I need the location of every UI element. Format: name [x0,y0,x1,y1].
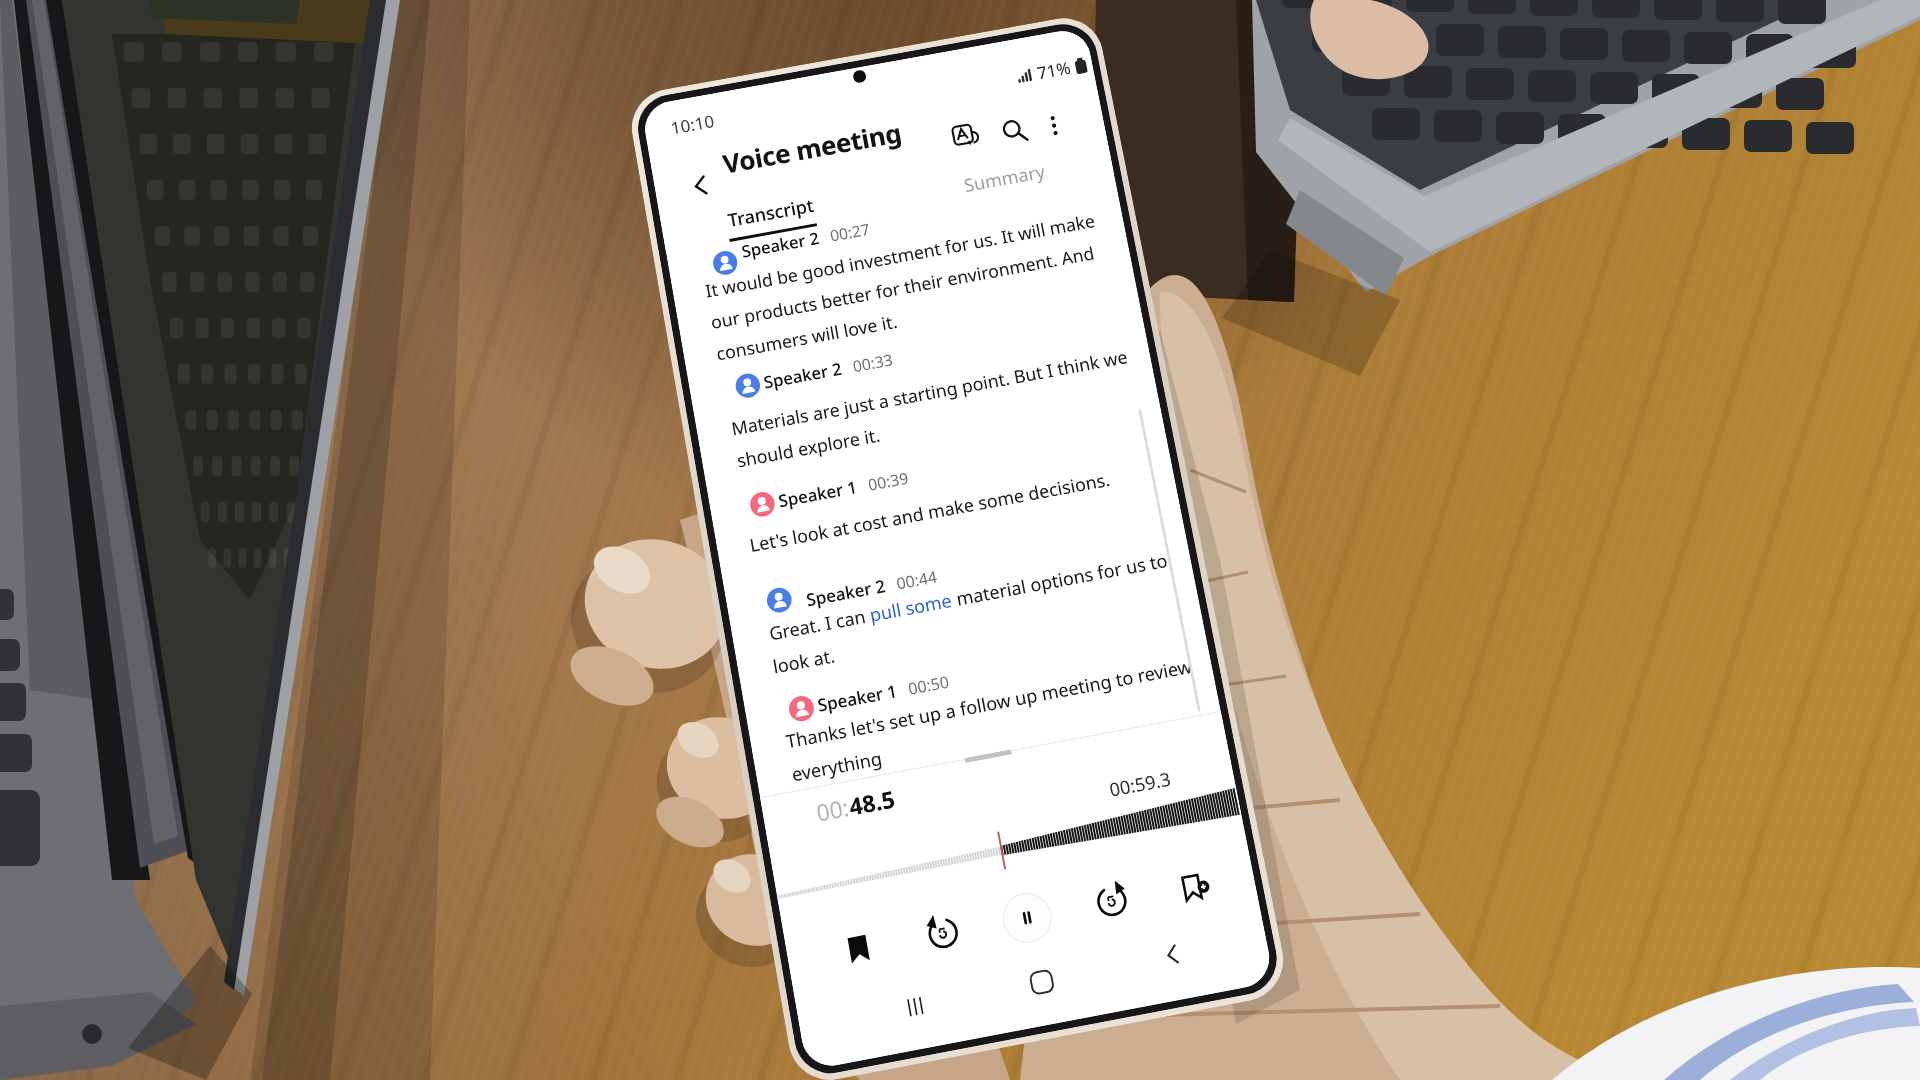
staticText: 48.5 [846,782,897,822]
button[interactable]: Forward 5 seconds [1084,873,1140,930]
staticText: Voice meeting [720,115,904,181]
staticText: 00:27 [828,218,872,245]
staticText: Speaker 2 [762,356,844,392]
staticText: Let's look at cost and make some decisio… [748,466,1113,557]
staticText: pull some [868,587,954,627]
button[interactable]: Search [990,108,1037,153]
staticText: Materials are just a starting point. But… [729,344,1136,472]
button[interactable]: Add bookmark [1171,861,1222,914]
button[interactable]: Back [1150,932,1194,977]
button[interactable]: Recent apps [893,984,937,1029]
button[interactable]: Home [1020,960,1064,1005]
staticText: Great. I can [767,603,872,646]
staticText: Speaker 2 [804,573,887,610]
button[interactable]: Pause [998,889,1056,947]
staticText: 00:59.3 [1107,766,1173,802]
staticText: 71% [1035,56,1073,84]
staticText: 00:39 [866,466,910,495]
button[interactable]: Rewind 5 seconds [915,905,971,962]
staticText: 00:50 [906,670,951,699]
button[interactable]: More options [1032,105,1075,146]
staticText: look at. [771,643,837,679]
staticText: Speaker 2 [740,226,821,262]
staticText: Transcript [726,193,816,233]
staticText: Summary [962,159,1047,198]
staticText: material options for us to [949,547,1170,612]
staticText: Speaker 1 [816,678,899,716]
staticText: 00:33 [851,348,895,376]
button[interactable]: Translate [942,113,988,159]
button[interactable]: Summary [947,152,1062,205]
staticText: 00: [814,791,852,828]
staticText: Thanks let's set up a follow up meeting … [784,653,1201,787]
staticText: 10:10 [669,109,716,139]
button[interactable]: Transcript [711,186,831,240]
staticText: It would be good investment for us. It w… [703,208,1109,365]
staticText: Speaker 1 [776,475,859,511]
staticText: 00:44 [894,565,939,594]
button[interactable]: Navigate up [679,165,721,206]
button[interactable]: Bookmark [833,923,884,975]
